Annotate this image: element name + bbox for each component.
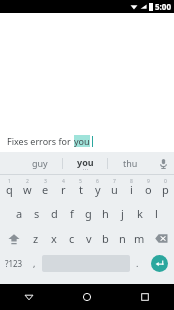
button[interactable]: 5: [72, 176, 89, 201]
staticText: u: [111, 182, 118, 197]
staticText: v: [86, 231, 92, 246]
button[interactable]: j: [114, 201, 131, 226]
button[interactable]: Shift: [0, 226, 27, 251]
staticText: p: [162, 182, 169, 197]
button[interactable]: 0: [157, 176, 174, 201]
staticText: 5: [79, 178, 82, 185]
button[interactable]: Backspace: [148, 226, 174, 251]
staticText: c: [69, 231, 75, 246]
button[interactable]: b: [97, 226, 114, 251]
staticText: s: [34, 206, 40, 221]
button[interactable]: Recents: [116, 284, 174, 310]
staticText: Fixes errors for: [7, 135, 74, 147]
staticText: n: [119, 231, 126, 246]
button[interactable]: 8: [123, 176, 140, 201]
button[interactable]: you: [63, 152, 107, 174]
button[interactable]: m: [131, 226, 148, 251]
staticText: you: [74, 135, 90, 147]
button[interactable]: Back: [0, 284, 58, 310]
staticText: ,: [33, 257, 36, 269]
staticText: w: [23, 182, 32, 197]
staticText: .: [136, 257, 139, 269]
staticText: 7: [113, 178, 116, 185]
staticText: q: [6, 182, 13, 197]
button[interactable]: 7: [106, 176, 123, 201]
button[interactable]: 1: [0, 176, 18, 201]
button[interactable]: g: [80, 201, 97, 226]
staticText: 3: [44, 178, 47, 185]
button[interactable]: Enter: [145, 251, 174, 276]
button[interactable]: .: [130, 251, 145, 276]
staticText: b: [102, 231, 109, 246]
button[interactable]: 9: [140, 176, 157, 201]
staticText: t: [79, 182, 83, 197]
button[interactable]: 4: [54, 176, 72, 201]
staticText: 6: [96, 178, 99, 185]
staticText: 5:00: [155, 1, 171, 12]
button[interactable]: 3: [36, 176, 54, 201]
button[interactable]: c: [63, 226, 80, 251]
button[interactable]: guy: [18, 152, 62, 174]
staticText: o: [145, 182, 152, 197]
button[interactable]: ?123: [0, 251, 27, 276]
button[interactable]: k: [131, 201, 148, 226]
button[interactable]: f: [63, 201, 80, 226]
staticText: 2: [26, 178, 29, 185]
staticText: g: [85, 206, 92, 221]
button[interactable]: l: [148, 201, 165, 226]
button[interactable]: Voice input: [152, 152, 174, 174]
staticText: r: [61, 182, 66, 197]
staticText: x: [51, 231, 57, 246]
staticText: 1: [8, 178, 11, 185]
staticText: j: [121, 206, 124, 221]
button[interactable]: x: [45, 226, 63, 251]
staticText: thu: [123, 157, 138, 169]
button[interactable]: h: [97, 201, 114, 226]
staticText: z: [33, 231, 39, 246]
staticText: you: [77, 156, 94, 168]
button[interactable]: v: [80, 226, 97, 251]
staticText: ?123: [5, 258, 23, 269]
staticText: h: [102, 206, 109, 221]
staticText: 9: [147, 178, 150, 185]
staticText: e: [42, 182, 49, 197]
button[interactable]: z: [27, 226, 45, 251]
staticText: k: [137, 206, 143, 221]
staticText: l: [155, 206, 158, 221]
button[interactable]: 2: [18, 176, 36, 201]
staticText: 8: [130, 178, 133, 185]
button[interactable]: ,: [27, 251, 42, 276]
staticText: a: [16, 206, 23, 221]
button[interactable]: a: [10, 201, 28, 226]
staticText: guy: [32, 157, 48, 169]
staticText: 0: [164, 178, 167, 185]
staticText: d: [51, 206, 58, 221]
button[interactable]: thu: [108, 152, 152, 174]
button[interactable]: s: [28, 201, 46, 226]
button[interactable]: Home: [58, 284, 116, 310]
staticText: y: [95, 182, 101, 197]
staticText: m: [134, 231, 145, 246]
button[interactable]: n: [114, 226, 131, 251]
staticText: i: [130, 182, 133, 197]
staticText: 4: [62, 178, 65, 185]
button[interactable]: d: [46, 201, 63, 226]
button[interactable]: 6: [89, 176, 106, 201]
staticText: f: [70, 206, 74, 221]
